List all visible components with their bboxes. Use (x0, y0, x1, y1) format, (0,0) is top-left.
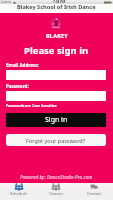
staticText: Powered by: DanceStudio-Pro.com (20, 174, 93, 180)
staticText: BLAKEY (46, 32, 68, 39)
staticText: Password: (6, 83, 29, 89)
staticText: Contact (87, 191, 102, 196)
staticText: Schedule (10, 191, 28, 196)
button[interactable]: Contact (75, 183, 113, 200)
staticText: 7:38 PM (53, 0, 66, 4)
staticText: Please sign in (24, 44, 89, 57)
staticText: Carrier (1, 0, 12, 4)
staticText: Sign in (45, 115, 68, 125)
button[interactable]: Schedule (0, 183, 37, 200)
staticText: Email Address: (6, 62, 39, 68)
button[interactable]: Sign in (6, 113, 106, 127)
staticText: Blakey School of Irish Dance (17, 3, 96, 11)
staticText: Passwords are Case Sensitive (6, 103, 57, 108)
staticText: Forgot your password? (26, 137, 86, 144)
staticText: Classes (49, 191, 63, 196)
button[interactable]: Forgot your password? (6, 134, 106, 146)
button[interactable]: Classes (37, 183, 75, 200)
